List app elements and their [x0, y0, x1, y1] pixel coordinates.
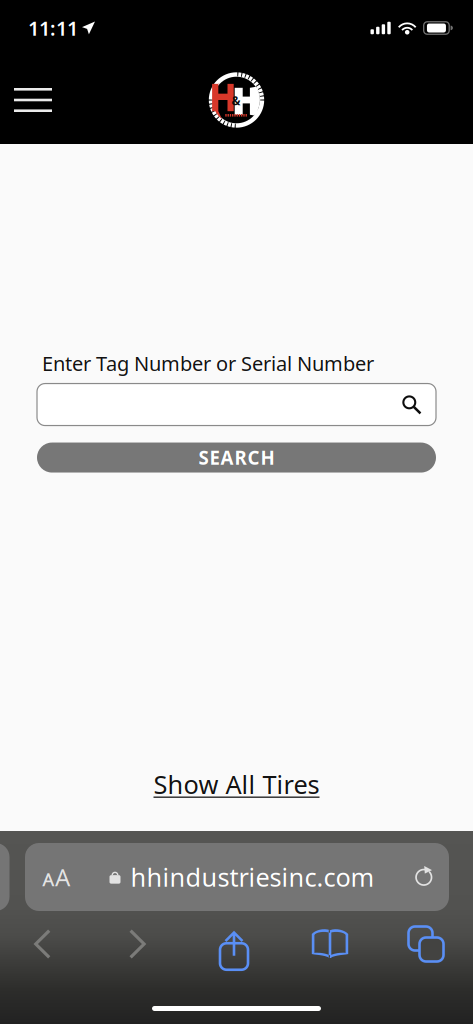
staticText: ᴀA	[42, 861, 70, 893]
button[interactable]: SEARCH	[37, 443, 436, 473]
staticText: SEARCH	[198, 445, 274, 470]
button[interactable]: Forward	[90, 921, 186, 967]
button[interactable]: ᴀA	[25, 843, 449, 911]
button[interactable]: Share	[186, 921, 282, 967]
button[interactable]: Bookmarks	[282, 921, 378, 967]
staticText: &	[231, 92, 240, 108]
staticText: Show All Tires	[153, 767, 319, 801]
staticText: 11:11	[28, 15, 78, 41]
staticText: Enter Tag Number or Serial Number	[42, 350, 374, 377]
button[interactable]: Back	[0, 921, 90, 967]
button[interactable]: Menu	[0, 66, 66, 134]
button[interactable]: Tabs	[378, 921, 473, 967]
staticText: hhindustriesinc.com	[130, 860, 374, 894]
button[interactable]: Show All Tires	[0, 767, 473, 801]
